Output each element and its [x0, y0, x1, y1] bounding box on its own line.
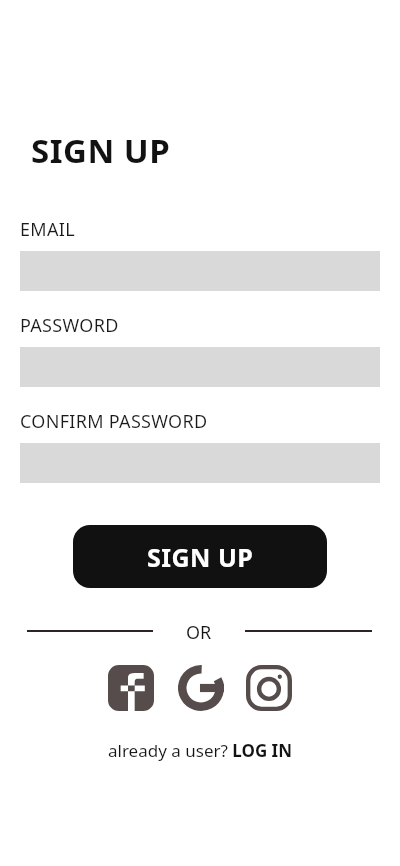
button[interactable]: Sign up with Facebook: [108, 665, 154, 711]
staticText: already a user? LOG IN: [108, 739, 293, 762]
staticText: SIGN UP: [147, 540, 254, 574]
staticText: SIGN UP: [31, 128, 171, 173]
staticText: EMAIL: [20, 217, 75, 242]
button[interactable]: already a user? LOG IN: [108, 739, 293, 762]
button[interactable]: Sign up with Google: [178, 665, 224, 711]
staticText: OR: [186, 620, 212, 642]
button[interactable]: SIGN UP: [73, 525, 327, 588]
staticText: PASSWORD: [20, 313, 119, 338]
staticText: CONFIRM PASSWORD: [20, 409, 208, 434]
button[interactable]: Sign up with Instagram: [246, 665, 292, 711]
